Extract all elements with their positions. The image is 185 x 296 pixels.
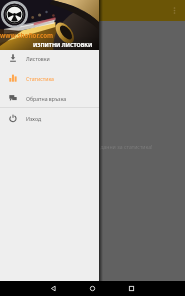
- button[interactable]: Recents: [125, 282, 138, 295]
- staticText: ИЗПИТНИ ЛИСТОВКИ: [33, 41, 93, 48]
- button[interactable]: Статистика: [0, 68, 99, 88]
- staticText: Все още нямате въведени данни за статист…: [33, 143, 153, 150]
- staticText: Обратна връзка: [26, 95, 67, 102]
- button[interactable]: Back: [47, 282, 60, 295]
- staticText: Листовки: [26, 55, 50, 62]
- staticText: Статистика: [26, 75, 54, 82]
- button[interactable]: Изход: [0, 108, 99, 128]
- button[interactable]: Обратна връзка: [0, 88, 99, 108]
- staticText: www.shofior.com: [0, 31, 54, 39]
- button[interactable]: Home: [86, 282, 99, 295]
- staticText: Изход: [26, 115, 42, 122]
- button[interactable]: Листовки: [0, 48, 99, 68]
- button[interactable]: More options: [168, 4, 181, 17]
